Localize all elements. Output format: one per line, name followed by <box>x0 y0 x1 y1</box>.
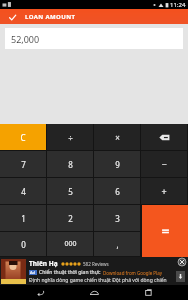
staticText: Ad <box>30 270 36 275</box>
button[interactable]: Download <box>176 271 185 282</box>
button[interactable]: Backspace <box>141 124 187 150</box>
button[interactable]: 0 <box>0 232 46 256</box>
staticText: 5 <box>68 186 73 197</box>
staticText: 7 <box>21 159 26 170</box>
button[interactable]: 9 <box>94 151 140 177</box>
button[interactable]: 1 <box>0 205 46 231</box>
staticText: 52,000 <box>11 33 40 45</box>
button[interactable]: 52,000 <box>5 28 183 49</box>
staticText: Định nghĩa dòng game chiến thuật Đột phá… <box>29 277 167 284</box>
button[interactable]: 7 <box>0 151 46 177</box>
button[interactable]: 3 <box>94 205 140 231</box>
button[interactable]: Thiên Hạ <box>0 257 188 285</box>
button[interactable]: 8 <box>47 151 93 177</box>
button[interactable]: 5 <box>47 178 93 204</box>
staticText: Thiên Hạ <box>29 259 58 268</box>
button[interactable]: Close ad <box>178 258 186 266</box>
staticText: ÷ <box>68 132 73 143</box>
staticText: Chiến thuật thời gian thực <box>39 269 101 276</box>
staticText: 2 <box>68 213 73 224</box>
button[interactable]: , <box>94 232 140 256</box>
staticText: 9 <box>115 159 120 170</box>
button[interactable]: 6 <box>94 178 140 204</box>
button[interactable]: − <box>141 151 187 177</box>
staticText: × <box>115 132 120 143</box>
button[interactable]: Recent apps <box>135 285 161 300</box>
staticText: 11:24 <box>170 1 186 9</box>
button[interactable]: C <box>0 124 46 150</box>
button[interactable]: Back <box>28 285 54 300</box>
button[interactable]: × <box>94 124 140 150</box>
staticText: Download from Google Play <box>103 270 163 276</box>
button[interactable]: 2 <box>47 205 93 231</box>
button[interactable]: 4 <box>0 178 46 204</box>
staticText: 3 <box>115 213 120 224</box>
staticText: 6 <box>115 186 120 197</box>
staticText: + <box>161 185 167 197</box>
staticText: C <box>20 132 26 143</box>
staticText: 000 <box>64 239 77 249</box>
button[interactable]: ÷ <box>47 124 93 150</box>
button[interactable]: Confirm <box>5 10 19 24</box>
staticText: 1 <box>21 213 26 224</box>
button[interactable]: Home <box>81 285 107 300</box>
staticText: 4 <box>21 186 26 197</box>
button[interactable]: + <box>141 178 187 204</box>
button[interactable]: Equals <box>142 205 188 257</box>
staticText: LOAN AMOUNT <box>25 13 76 21</box>
button[interactable]: 000 <box>47 232 93 256</box>
staticText: 582 Reviews <box>83 261 109 267</box>
staticText: − <box>161 158 167 170</box>
staticText: , <box>116 239 119 250</box>
staticText: 8 <box>68 159 73 170</box>
staticText: 0 <box>21 239 26 250</box>
